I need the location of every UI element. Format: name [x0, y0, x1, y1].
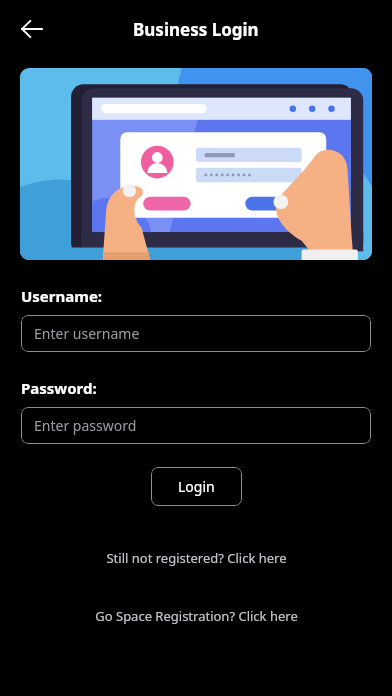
- button[interactable]: Back: [12, 9, 52, 49]
- button[interactable]: Enter username: [21, 315, 371, 352]
- staticText: Username:: [21, 286, 103, 306]
- button[interactable]: Login: [151, 467, 242, 506]
- staticText: Login: [178, 477, 215, 496]
- staticText: Enter username: [34, 324, 140, 343]
- staticText: Still not registered? Click here: [106, 549, 287, 567]
- staticText: Enter password: [34, 416, 137, 435]
- staticText: Password:: [21, 378, 97, 398]
- button[interactable]: Still not registered? Click here: [98, 546, 295, 570]
- button[interactable]: Go Space Registration? Click here: [87, 604, 306, 628]
- staticText: Business Login: [133, 18, 259, 41]
- staticText: Go Space Registration? Click here: [95, 607, 298, 625]
- button[interactable]: Enter password: [21, 407, 371, 444]
